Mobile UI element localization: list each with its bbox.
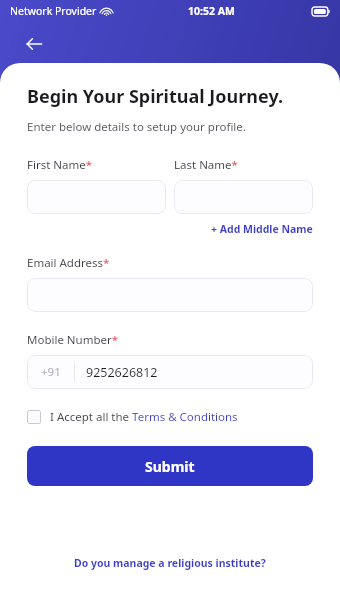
staticText: Mobile Number* bbox=[27, 332, 119, 348]
staticText: First Name* bbox=[27, 157, 93, 173]
staticText: Begin Your Spiritual Journey. bbox=[27, 84, 283, 109]
staticText: + Add Middle Name bbox=[211, 222, 313, 236]
button[interactable]: +91 bbox=[27, 355, 313, 389]
staticText: Submit bbox=[145, 457, 195, 476]
staticText: Email Address* bbox=[27, 255, 110, 271]
button[interactable]: I Accept all the Terms & Conditions bbox=[27, 407, 238, 427]
button[interactable]: Submit bbox=[27, 446, 313, 486]
staticText: Network Provider bbox=[10, 4, 97, 18]
button[interactable]: Do you manage a religious institute? bbox=[74, 556, 266, 570]
staticText: I Accept all the Terms & Conditions bbox=[50, 409, 238, 425]
staticText: Last Name* bbox=[174, 157, 238, 173]
staticText: Do you manage a religious institute? bbox=[74, 556, 266, 570]
button[interactable]: Back bbox=[18, 28, 50, 60]
staticText: Enter below details to setup your profil… bbox=[27, 119, 246, 135]
staticText: 10:52 AM bbox=[188, 4, 235, 18]
button[interactable] bbox=[174, 180, 313, 214]
button[interactable]: + Add Middle Name bbox=[211, 222, 313, 236]
button[interactable] bbox=[27, 180, 166, 214]
staticText: 9252626812 bbox=[86, 364, 158, 381]
staticText: +91 bbox=[41, 364, 61, 380]
button[interactable] bbox=[27, 278, 313, 312]
